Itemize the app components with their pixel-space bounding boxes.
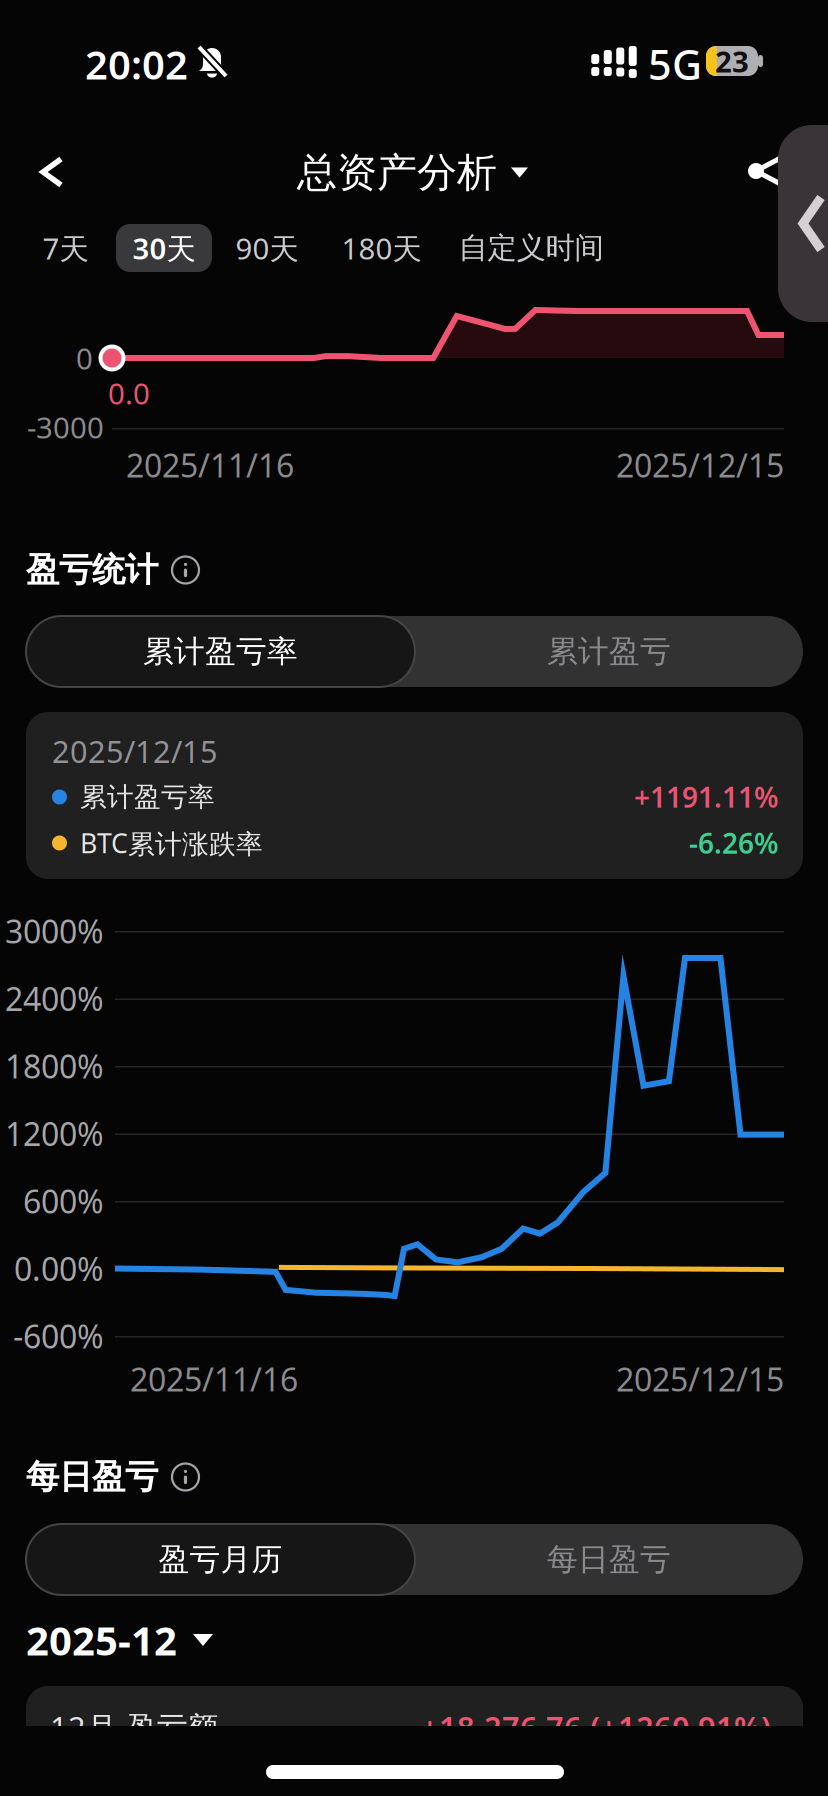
staticText: 7天 <box>42 228 88 267</box>
staticText: 累计盈亏率 <box>143 633 298 670</box>
staticText: 2025/12/15 <box>52 731 218 771</box>
button[interactable]: 180天 <box>327 224 436 272</box>
staticText: 盈亏统计 <box>26 549 158 590</box>
staticText: 1800% <box>5 1045 104 1087</box>
button[interactable]: 7天 <box>25 224 106 272</box>
staticText: 2400% <box>5 977 104 1020</box>
button[interactable]: Info <box>172 1463 199 1490</box>
staticText: 5G <box>648 37 702 91</box>
staticText: 每日盈亏 <box>26 1456 158 1497</box>
staticText: 2025/12/15 <box>616 1358 784 1400</box>
staticText: 1200% <box>5 1112 104 1155</box>
staticText: 90天 <box>235 228 298 267</box>
button[interactable]: Share <box>728 127 816 215</box>
button[interactable]: 累计盈亏 <box>415 616 803 687</box>
button[interactable]: 90天 <box>218 224 316 272</box>
button[interactable]: Floating window handle <box>778 125 828 322</box>
staticText: -3000 <box>27 407 104 446</box>
staticText: 自定义时间 <box>458 230 603 266</box>
staticText: 180天 <box>341 228 421 267</box>
staticText: 0 <box>76 338 93 377</box>
staticText: 600% <box>23 1180 104 1222</box>
staticText: 30天 <box>132 228 195 267</box>
staticText: 0.0 <box>108 373 150 412</box>
staticText: 23 <box>715 41 749 80</box>
button[interactable]: 2025-12 <box>26 1617 426 1663</box>
button[interactable]: 每日盈亏 <box>415 1524 803 1595</box>
staticText: 2025-12 <box>26 1613 177 1666</box>
button[interactable]: Info <box>172 556 199 583</box>
staticText: 12月 盈亏额 <box>50 1707 219 1747</box>
staticText: 每日盈亏 <box>547 1541 671 1578</box>
button[interactable]: 盈亏月历 <box>26 1524 415 1595</box>
staticText: BTC累计涨跌率 <box>80 825 263 861</box>
staticText: +18,276.76 (+1260.91%) <box>421 1707 771 1747</box>
staticText: 0.00% <box>14 1247 104 1290</box>
staticText: 2025/11/16 <box>130 1358 298 1400</box>
staticText: -600% <box>13 1315 104 1357</box>
button[interactable]: 总资产分析 <box>279 130 546 215</box>
button[interactable]: 30天 <box>116 224 212 272</box>
staticText: 2025/12/15 <box>616 444 784 486</box>
staticText: 20:02 <box>85 37 188 90</box>
staticText: 累计盈亏率 <box>80 781 215 813</box>
staticText: 总资产分析 <box>297 148 497 197</box>
staticText: 3000% <box>5 910 104 952</box>
staticText: 累计盈亏 <box>547 633 671 670</box>
staticText: 2025/11/16 <box>126 444 294 486</box>
button[interactable]: 自定义时间 <box>448 224 614 272</box>
staticText: -6.26% <box>689 824 779 862</box>
button[interactable]: 累计盈亏率 <box>26 616 415 687</box>
button[interactable]: Back <box>8 128 96 216</box>
staticText: +1191.11% <box>634 778 779 816</box>
staticText: 盈亏月历 <box>158 1541 282 1578</box>
